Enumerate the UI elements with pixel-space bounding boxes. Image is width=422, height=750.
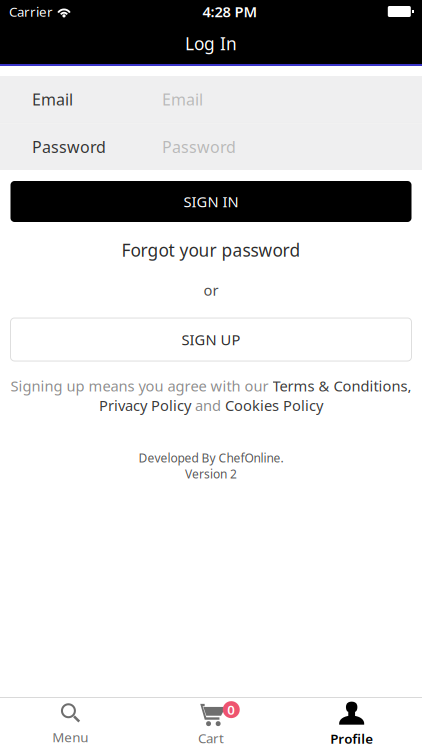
button[interactable]: SIGN IN (10, 181, 411, 222)
button[interactable]: SIGN UP (10, 318, 411, 361)
button[interactable]: Cookies Policy (225, 395, 323, 415)
button[interactable]: Email (0, 76, 422, 122)
staticText: 4:28 PM (202, 2, 257, 21)
staticText: Privacy Policy (99, 395, 191, 415)
staticText: Menu (52, 728, 88, 746)
button[interactable]: Menu (0, 698, 141, 750)
button[interactable]: Privacy Policy (99, 395, 191, 415)
staticText: Email (162, 89, 203, 110)
staticText: 0 (227, 701, 235, 718)
staticText: Terms & Conditions, (272, 376, 411, 395)
staticText: Forgot your password (121, 238, 300, 261)
button[interactable]: Terms & Conditions, (272, 376, 411, 395)
staticText: Password (32, 136, 106, 157)
staticText: and (191, 395, 225, 415)
staticText: Cookies Policy (225, 395, 323, 415)
staticText: Profile (330, 730, 373, 747)
staticText: Signing up means you agree with our (10, 376, 272, 395)
staticText: SIGN IN (183, 192, 238, 211)
staticText: Log In (185, 32, 237, 55)
button[interactable]: Profile (281, 698, 422, 750)
staticText: Password (162, 136, 236, 157)
button[interactable]: Password (0, 123, 422, 170)
button[interactable]: 0 (141, 698, 281, 750)
staticText: or (203, 280, 218, 300)
button[interactable]: Forgot your password (0, 237, 422, 263)
staticText: Cart (198, 729, 224, 747)
staticText: Carrier (9, 3, 53, 20)
staticText: Version 2 (185, 466, 237, 482)
staticText: SIGN UP (181, 330, 240, 349)
staticText: Email (32, 89, 73, 110)
staticText: Developed By ChefOnline. (138, 450, 283, 466)
